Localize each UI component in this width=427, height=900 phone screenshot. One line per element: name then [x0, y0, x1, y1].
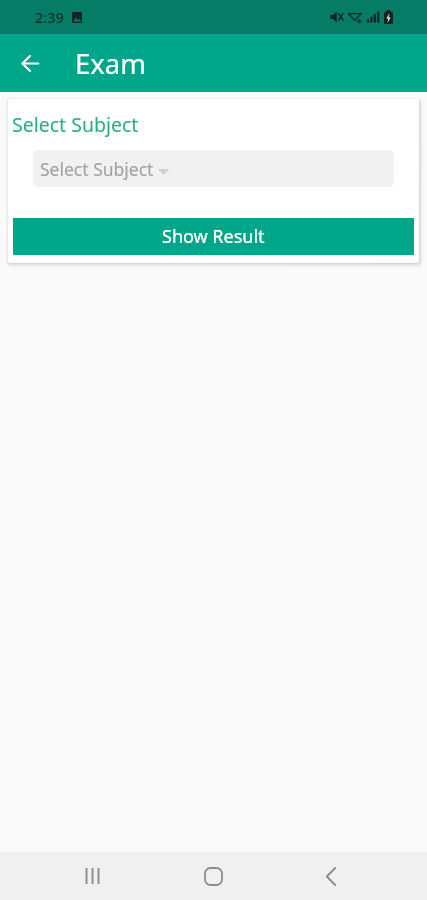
staticText: 2:39 — [35, 7, 64, 27]
button[interactable]: Home — [189, 852, 237, 900]
staticText: Exam — [75, 45, 146, 82]
staticText: Select Subject — [12, 111, 139, 138]
staticText: Show Result — [162, 224, 265, 249]
button[interactable]: Back — [10, 43, 50, 83]
button[interactable]: Show Result — [13, 218, 414, 255]
button[interactable]: Back — [307, 852, 355, 900]
button[interactable]: Recent apps — [68, 852, 116, 900]
staticText: Select Subject — [40, 157, 154, 181]
button[interactable]: Select Subject — [33, 150, 394, 187]
